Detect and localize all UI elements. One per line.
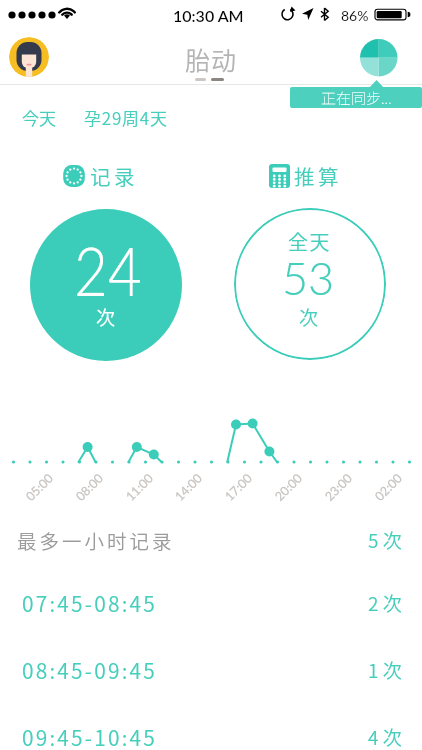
staticText: 次 [96,303,116,331]
button[interactable]: 最多一小时记录 [17,524,402,556]
button[interactable] [360,39,398,77]
staticText: 07:45-08:45 [22,588,157,618]
staticText: 最多一小时记录 [17,526,175,554]
staticText: 17:00 [222,470,256,504]
staticText: 14:00 [172,470,206,504]
staticText: 02:00 [372,470,406,504]
staticText: 53 [282,251,335,305]
staticText: 全天 [288,227,331,255]
staticText: 5 次 [368,526,402,554]
staticText: 孕29周4天 [84,105,168,130]
staticText: 08:45-09:45 [22,655,157,685]
button[interactable] [9,37,49,77]
staticText: 86% [341,7,369,24]
staticText: 今天 [22,105,56,130]
staticText: 1 次 [368,656,402,684]
staticText: 24 [74,230,142,310]
button[interactable]: 09:45-10:45 [22,721,402,750]
button[interactable] [234,208,386,360]
staticText: 23:00 [322,470,356,504]
staticText: 05:00 [23,470,57,504]
staticText: 09:45-10:45 [22,722,157,750]
staticText: 20:00 [272,470,306,504]
staticText: 08:00 [73,470,107,504]
staticText: 2 次 [368,589,402,617]
button[interactable]: 推算 [262,158,357,194]
staticText: 胎动 [185,41,238,73]
staticText: 次 [299,303,319,331]
button[interactable]: 07:45-08:45 [22,587,402,619]
button[interactable] [30,209,182,361]
staticText: 11:00 [123,470,157,504]
staticText: 正在同步... [321,87,392,108]
staticText: 推算 [294,161,342,191]
staticText: 10:30 AM [173,6,244,25]
staticText: 记录 [90,161,138,191]
button[interactable]: 记录 [55,158,150,194]
button[interactable]: 08:45-09:45 [22,654,402,686]
staticText: 4 次 [368,723,402,750]
